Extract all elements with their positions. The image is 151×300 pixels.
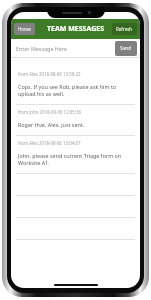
staticText: Enter Message Here [16,45,68,52]
button[interactable]: from Alex 2018-08-06 13:59:22 [11,67,140,105]
button[interactable]: Home [14,23,35,35]
staticText: Refresh [116,26,133,32]
button[interactable]: from John 2018-09-06 12:05:36 [11,105,140,136]
staticText: John, please send current Triage form on… [18,152,131,166]
staticText: TEAM MESSAGES [47,24,105,34]
staticText: from Alex 2018-08-06 13:59:22 [18,71,81,77]
button[interactable]: Send [115,41,137,56]
staticText: Send [120,45,132,52]
staticText: from Alex 2018-08-06 13:04:07 [18,140,81,146]
button[interactable]: Enter Message Here [11,39,115,58]
staticText: Home [18,26,31,32]
staticText: Cops. If you see Rob, please ask him to … [18,83,131,97]
button[interactable]: Refresh [112,23,137,35]
staticText: Roger that, Alex, just sent. [18,121,85,128]
button[interactable]: from Alex 2018-08-06 13:04:07 [11,136,140,174]
staticText: from John 2018-09-06 12:05:36 [18,109,82,115]
